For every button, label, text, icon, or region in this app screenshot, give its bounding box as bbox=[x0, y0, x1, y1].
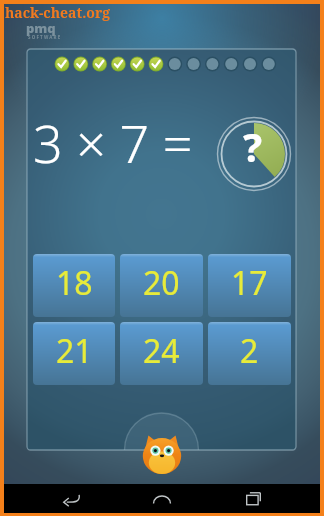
staticText: ? bbox=[243, 119, 263, 173]
staticText: SOFTWARE bbox=[28, 34, 62, 40]
staticText: 20 bbox=[143, 261, 180, 305]
staticText: 21 bbox=[56, 329, 93, 373]
staticText: hack-cheat.org bbox=[5, 3, 111, 22]
staticText: pmq bbox=[26, 19, 56, 37]
button[interactable]: Home bbox=[138, 484, 186, 513]
button[interactable]: 17 bbox=[208, 254, 291, 317]
button[interactable]: 20 bbox=[120, 254, 203, 317]
button[interactable]: 2 bbox=[208, 322, 291, 385]
staticText: 24 bbox=[143, 329, 180, 373]
button[interactable]: Recent apps bbox=[229, 484, 277, 513]
button[interactable]: 18 bbox=[33, 254, 115, 317]
staticText: 3 × 7 = bbox=[33, 107, 193, 178]
staticText: 18 bbox=[56, 261, 93, 305]
button[interactable]: 21 bbox=[33, 322, 115, 385]
button[interactable]: 24 bbox=[120, 322, 203, 385]
button[interactable]: Mascot bbox=[142, 435, 182, 474]
button[interactable]: Back bbox=[47, 484, 95, 513]
staticText: 2 bbox=[240, 329, 259, 373]
staticText: 17 bbox=[231, 261, 268, 305]
